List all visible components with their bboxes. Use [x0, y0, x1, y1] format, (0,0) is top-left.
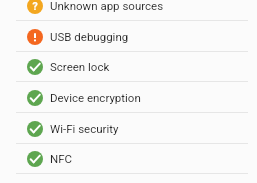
button[interactable]: Secure [0, 82, 257, 113]
staticText: NFC [50, 152, 73, 165]
other: Secure [27, 59, 43, 75]
other: Secure [27, 121, 43, 137]
other: Unknown status [27, 0, 43, 14]
staticText: Wi-Fi security [50, 122, 119, 135]
staticText: Screen lock [50, 60, 110, 73]
other: Secure [27, 151, 43, 167]
button[interactable]: Secure [0, 143, 257, 174]
button[interactable]: Secure [0, 113, 257, 144]
other: Warning [27, 29, 43, 45]
other: Secure [27, 90, 43, 106]
staticText: ? [32, 0, 38, 12]
staticText: Unknown app sources [50, 0, 164, 12]
button[interactable]: Warning [0, 21, 257, 52]
staticText: USB debugging [50, 30, 129, 43]
staticText: Device encryption [50, 91, 141, 104]
button[interactable]: Secure [0, 51, 257, 82]
button[interactable]: Unknown status [0, 0, 257, 21]
